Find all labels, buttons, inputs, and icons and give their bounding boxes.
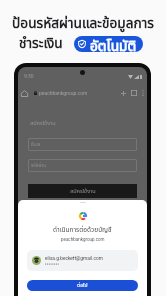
staticText: elisa.g.beckett@gmail.com <box>45 256 103 262</box>
staticText: peachbankgroup.com <box>61 237 105 242</box>
staticText: อีเมล <box>31 141 41 148</box>
staticText: อัตโนมัติ <box>90 36 137 52</box>
staticText: สมัครใช้งาน <box>70 187 96 195</box>
staticText: ต่อไป <box>77 282 88 290</box>
button[interactable]: ต่อไป <box>27 280 138 291</box>
staticText: 9:30 <box>24 73 34 79</box>
button[interactable]: elisa.g.beckett@gmail.com <box>27 250 138 271</box>
staticText: ชำระเงิน <box>19 33 63 54</box>
staticText: สมัครใช้งาน <box>30 119 56 127</box>
staticText: รหัสผ่าน <box>31 162 46 169</box>
button[interactable]: สมัครใช้งาน <box>28 184 137 198</box>
staticText: peachbankgroup.com <box>39 90 88 96</box>
staticText: ดำเนินการต่อด้วยบัญชี <box>53 225 112 235</box>
staticText: ป้อนรหัสผ่านและข้อมูลการ <box>12 13 154 34</box>
